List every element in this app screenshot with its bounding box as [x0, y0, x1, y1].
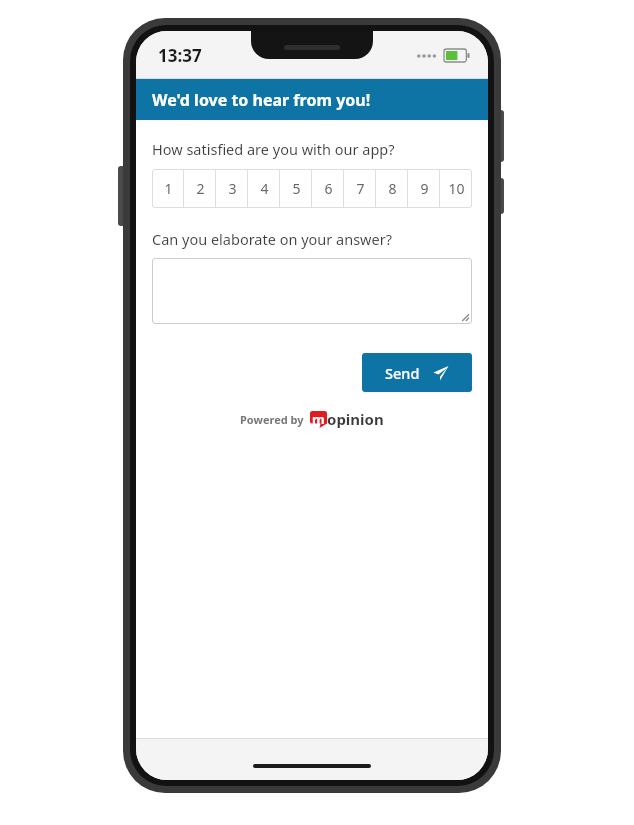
button[interactable]: 3	[216, 169, 248, 208]
staticText: 13:37	[158, 44, 202, 67]
staticText: 6	[324, 179, 333, 198]
staticText: m	[312, 410, 325, 427]
staticText: 9	[420, 179, 429, 198]
button[interactable]: 1	[152, 169, 184, 208]
staticText: Can you elaborate on your answer?	[152, 229, 392, 249]
staticText: opinion	[327, 409, 384, 429]
staticText: 4	[260, 179, 269, 198]
staticText: 8	[388, 179, 397, 198]
staticText: How satisfied are you with our app?	[152, 139, 395, 159]
button[interactable]	[152, 258, 472, 324]
staticText: Send	[385, 363, 420, 383]
button[interactable]: 7	[344, 169, 376, 208]
button[interactable]: 8	[376, 169, 408, 208]
staticText: 7	[356, 179, 365, 198]
button[interactable]: 2	[184, 169, 216, 208]
button[interactable]: 5	[280, 169, 312, 208]
staticText: We'd love to hear from you!	[152, 89, 371, 111]
button[interactable]: We'd love to hear from you!	[136, 79, 488, 120]
staticText: Powered by	[240, 412, 304, 427]
button[interactable]: 9	[408, 169, 440, 208]
staticText: 3	[228, 179, 237, 198]
staticText: 2	[196, 179, 205, 198]
button[interactable]: Send	[362, 353, 472, 392]
button[interactable]: 4	[248, 169, 280, 208]
button[interactable]: 10	[440, 169, 472, 208]
staticText: 10	[448, 179, 465, 198]
button[interactable]: 6	[312, 169, 344, 208]
staticText: 1	[164, 179, 173, 198]
staticText: 5	[292, 179, 301, 198]
